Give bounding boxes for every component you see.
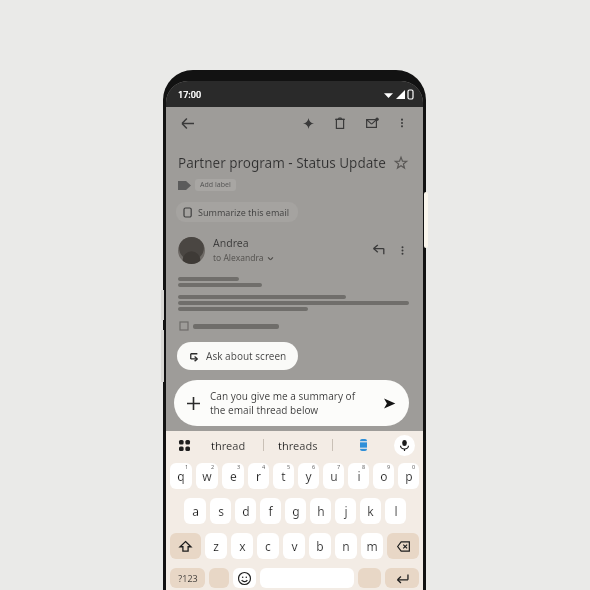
button[interactable]: More: [393, 241, 411, 259]
button[interactable]: ?123: [170, 568, 205, 588]
button[interactable]: r: [248, 463, 269, 489]
button[interactable]: Star: [391, 153, 411, 173]
button[interactable]: q: [170, 463, 192, 489]
button[interactable]: Space: [260, 568, 354, 588]
staticText: Add label: [200, 180, 231, 190]
staticText: e: [230, 468, 237, 484]
button[interactable]: i: [348, 463, 369, 489]
button[interactable]: j: [335, 498, 356, 524]
staticText: z: [213, 538, 219, 554]
button[interactable]: Keyboard options: [174, 435, 194, 455]
staticText: d: [242, 503, 250, 519]
button[interactable]: f: [260, 498, 281, 524]
staticText: Partner program - Status Update: [178, 154, 391, 172]
button[interactable]: w: [196, 463, 218, 489]
button[interactable]: Add: [174, 380, 409, 426]
staticText: n: [342, 538, 350, 554]
staticText: 5: [287, 463, 291, 470]
button[interactable]: Gemini: [297, 112, 319, 134]
button[interactable]: m: [361, 533, 383, 559]
button[interactable]: o: [373, 463, 394, 489]
button[interactable]: p: [398, 463, 419, 489]
button[interactable]: a: [184, 498, 206, 524]
staticText: x: [239, 538, 246, 554]
button[interactable]: v: [283, 533, 305, 559]
button[interactable]: Shift: [170, 533, 201, 559]
button[interactable]: n: [335, 533, 357, 559]
button[interactable]: c: [257, 533, 279, 559]
button[interactable]: Voice input: [394, 435, 415, 456]
button[interactable]: Mark unread: [361, 112, 383, 134]
button[interactable]: Ask about screen: [177, 342, 298, 370]
button[interactable]: Add: [184, 394, 202, 412]
staticText: v: [291, 538, 298, 554]
staticText: r: [256, 468, 261, 484]
button[interactable]: threads: [264, 438, 332, 453]
button[interactable]: Enter: [385, 568, 419, 588]
staticText: p: [405, 468, 413, 484]
button[interactable]: e: [222, 463, 244, 489]
button[interactable]: Delete: [329, 112, 351, 134]
button[interactable]: Backspace: [387, 533, 419, 559]
staticText: Can you give me a summary of the email t…: [210, 389, 373, 417]
button[interactable]: Emoji: [233, 568, 256, 588]
button[interactable]: s: [210, 498, 231, 524]
button[interactable]: t: [273, 463, 294, 489]
button[interactable]: More options: [391, 112, 413, 134]
button[interactable]: l: [385, 498, 406, 524]
staticText: q: [177, 468, 185, 484]
staticText: 17:00: [178, 88, 202, 100]
staticText: i: [357, 468, 361, 484]
staticText: Ask about screen: [206, 349, 287, 363]
button[interactable]: Add label: [195, 179, 236, 191]
staticText: 8: [362, 463, 366, 470]
button[interactable]: x: [231, 533, 253, 559]
staticText: 3: [237, 463, 241, 470]
button[interactable]: g: [285, 498, 306, 524]
button[interactable]: thread: [194, 438, 263, 453]
staticText: ?123: [178, 572, 198, 584]
staticText: m: [366, 538, 378, 554]
staticText: thread: [211, 438, 246, 453]
staticText: 1: [185, 463, 189, 470]
button[interactable]: y: [298, 463, 319, 489]
button[interactable]: [333, 439, 394, 451]
staticText: 9: [387, 463, 391, 470]
button[interactable]: [209, 568, 229, 588]
button[interactable]: Back: [176, 112, 198, 134]
staticText: 0: [412, 463, 416, 470]
staticText: l: [394, 503, 398, 519]
staticText: s: [218, 503, 224, 519]
staticText: a: [192, 503, 199, 519]
button[interactable]: u: [323, 463, 344, 489]
button[interactable]: [358, 568, 381, 588]
staticText: j: [344, 503, 348, 519]
button[interactable]: Reply: [369, 240, 389, 260]
staticText: k: [367, 503, 374, 519]
staticText: f: [268, 503, 273, 519]
staticText: 4: [262, 463, 266, 470]
staticText: 6: [312, 463, 316, 470]
staticText: Summarize this email: [198, 206, 290, 218]
staticText: h: [317, 503, 325, 519]
staticText: to Alexandra: [213, 252, 264, 264]
button[interactable]: d: [235, 498, 256, 524]
button[interactable]: b: [309, 533, 331, 559]
staticText: Andrea: [213, 236, 249, 250]
staticText: 2: [211, 463, 215, 470]
button[interactable]: Summarize this email: [176, 202, 298, 222]
button[interactable]: h: [310, 498, 331, 524]
staticText: b: [316, 538, 324, 554]
button[interactable]: k: [360, 498, 381, 524]
staticText: u: [330, 468, 338, 484]
staticText: w: [202, 468, 212, 484]
staticText: o: [380, 468, 388, 484]
staticText: threads: [278, 438, 318, 453]
staticText: g: [292, 503, 300, 519]
staticText: c: [265, 538, 271, 554]
button[interactable]: z: [205, 533, 227, 559]
button[interactable]: Send: [379, 393, 399, 413]
staticText: y: [305, 468, 312, 484]
staticText: 7: [337, 463, 341, 470]
staticText: t: [281, 468, 286, 484]
